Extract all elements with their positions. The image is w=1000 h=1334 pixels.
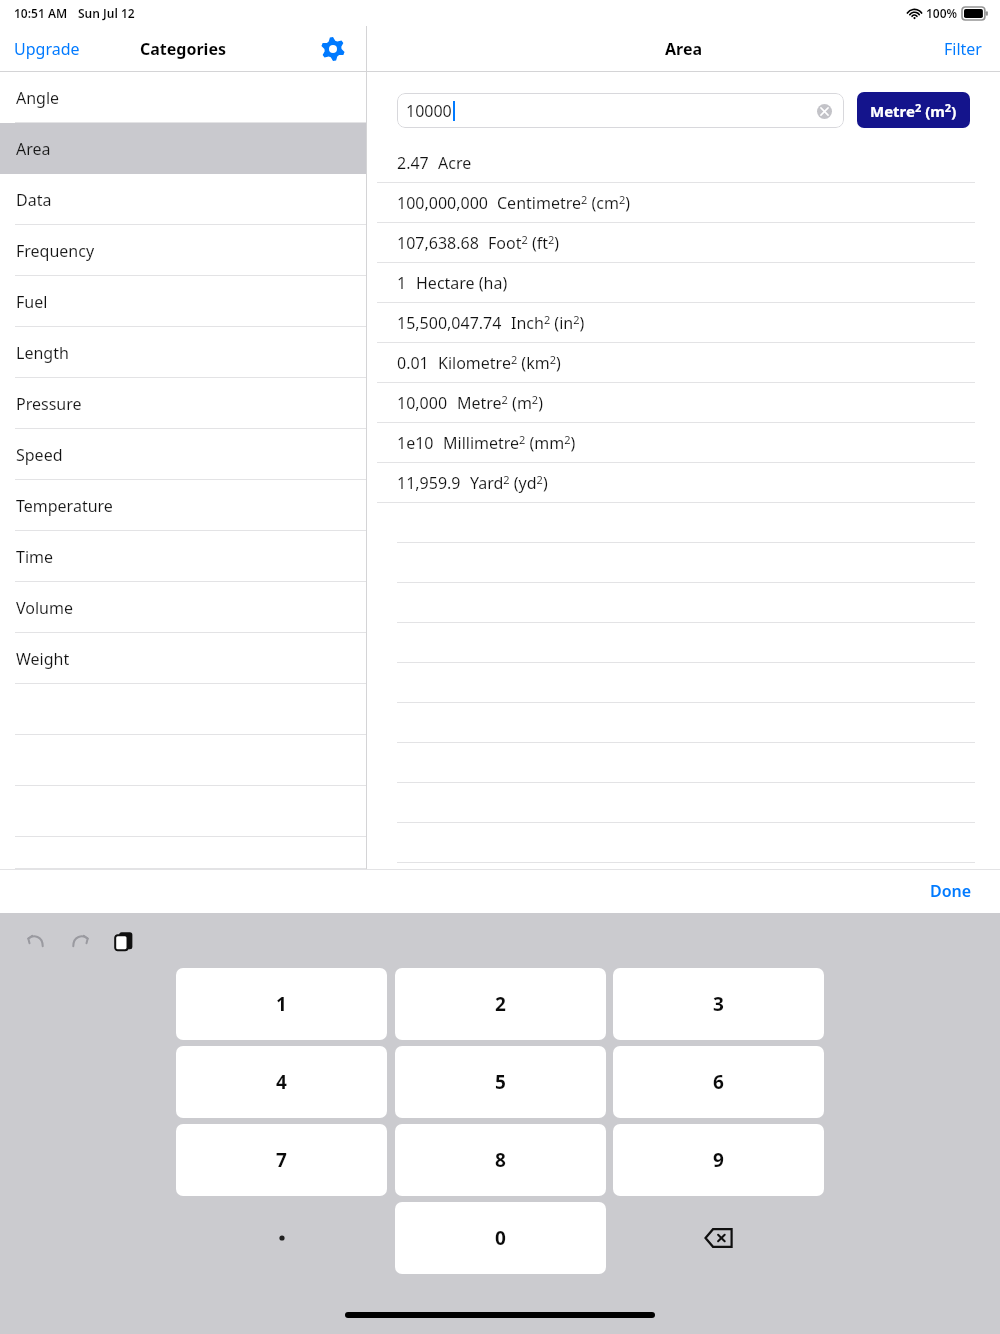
button[interactable]: 0	[395, 1202, 606, 1274]
staticText: 7	[276, 1147, 287, 1173]
staticText: Area	[16, 138, 51, 160]
staticText: 2.47	[397, 152, 429, 174]
staticText: Weight	[16, 648, 70, 670]
button[interactable]: Data	[0, 174, 366, 225]
button[interactable]: 2	[395, 968, 606, 1040]
staticText: Volume	[16, 597, 73, 619]
staticText: Time	[16, 546, 54, 568]
staticText: 10:51 AM	[14, 5, 68, 21]
staticText: Area	[665, 38, 703, 60]
staticText: 5	[495, 1069, 506, 1095]
staticText: 10000	[406, 100, 452, 122]
staticText: 10,000	[397, 392, 448, 414]
button[interactable]: Pressure	[0, 378, 366, 429]
staticText: Acre	[438, 152, 472, 174]
staticText: Angle	[16, 87, 60, 109]
staticText: Centimetre2 (cm2)	[497, 192, 630, 214]
staticText: Kilometre2 (km2)	[438, 352, 561, 374]
staticText: 1	[276, 991, 287, 1017]
staticText: 100,000,000	[397, 192, 488, 214]
staticText: 9	[713, 1147, 724, 1173]
staticText: Done	[930, 880, 972, 902]
button[interactable]: Speed	[0, 429, 366, 480]
button[interactable]: 7	[176, 1124, 387, 1196]
button[interactable]: Time	[0, 531, 366, 582]
staticText: 107,638.68	[397, 232, 479, 254]
staticText: Metre2 (m2)	[457, 392, 543, 414]
staticText: 0.01	[397, 352, 429, 374]
button[interactable]: Weight	[0, 633, 366, 684]
button[interactable]: Angle	[0, 72, 366, 123]
button[interactable]: 2.47	[367, 143, 1000, 183]
staticText: Hectare (ha)	[416, 272, 508, 294]
button[interactable]: 3	[613, 968, 824, 1040]
button[interactable]	[176, 1202, 387, 1274]
staticText: Temperature	[16, 495, 113, 517]
staticText: 8	[495, 1147, 506, 1173]
staticText: Categories	[140, 38, 226, 60]
button[interactable]: Fuel	[0, 276, 366, 327]
staticText: Fuel	[16, 291, 48, 313]
button[interactable]: Upgrade	[4, 32, 90, 66]
button[interactable]: 0.01	[367, 343, 1000, 383]
staticText: Metre2 (m2)	[870, 100, 957, 121]
button[interactable]: Area	[0, 123, 366, 174]
button[interactable]: 11,959.9	[367, 463, 1000, 503]
staticText: Frequency	[16, 240, 95, 262]
button[interactable]: 6	[613, 1046, 824, 1118]
staticText: Data	[16, 189, 52, 211]
staticText: Length	[16, 342, 69, 364]
button[interactable]: 10000	[397, 93, 844, 128]
button[interactable]: Settings	[316, 32, 350, 66]
staticText: 100%	[926, 5, 958, 21]
button[interactable]: Undo	[18, 923, 54, 959]
button[interactable]: Filter	[934, 32, 992, 66]
staticText: Upgrade	[14, 38, 80, 60]
button[interactable]: 15,500,047.74	[367, 303, 1000, 343]
staticText: 1e10	[397, 432, 434, 454]
staticText: 2	[495, 991, 506, 1017]
button[interactable]: 10,000	[367, 383, 1000, 423]
staticText: 6	[713, 1069, 724, 1095]
button[interactable]: Metre2 (m2)	[857, 92, 970, 128]
button[interactable]: Paste	[106, 923, 142, 959]
button[interactable]: 5	[395, 1046, 606, 1118]
button[interactable]: 9	[613, 1124, 824, 1196]
staticText: Yard2 (yd2)	[470, 472, 548, 494]
button[interactable]: 8	[395, 1124, 606, 1196]
button[interactable]: Temperature	[0, 480, 366, 531]
staticText: Foot2 (ft2)	[488, 232, 560, 254]
button[interactable]: Volume	[0, 582, 366, 633]
button[interactable]: Clear text	[813, 100, 835, 122]
button[interactable]: 1	[176, 968, 387, 1040]
staticText: 0	[495, 1225, 506, 1251]
staticText: Speed	[16, 444, 63, 466]
staticText: 11,959.9	[397, 472, 461, 494]
staticText: Inch2 (in2)	[511, 312, 585, 334]
button[interactable]: 100,000,000	[367, 183, 1000, 223]
staticText: 1	[397, 272, 407, 294]
button[interactable]: Frequency	[0, 225, 366, 276]
button[interactable]: 107,638.68	[367, 223, 1000, 263]
staticText: 4	[276, 1069, 287, 1095]
staticText: 3	[713, 991, 724, 1017]
button[interactable]: Done	[922, 875, 980, 907]
button[interactable]: Length	[0, 327, 366, 378]
button[interactable]: Backspace	[613, 1202, 824, 1274]
button[interactable]: Redo	[62, 923, 98, 959]
staticText: Filter	[944, 38, 982, 60]
button[interactable]: 4	[176, 1046, 387, 1118]
staticText: Millimetre2 (mm2)	[443, 432, 576, 454]
staticText: Pressure	[16, 393, 82, 415]
button[interactable]: 1	[367, 263, 1000, 303]
button[interactable]: 1e10	[367, 423, 1000, 463]
staticText: Sun Jul 12	[78, 5, 135, 21]
staticText: 15,500,047.74	[397, 312, 502, 334]
